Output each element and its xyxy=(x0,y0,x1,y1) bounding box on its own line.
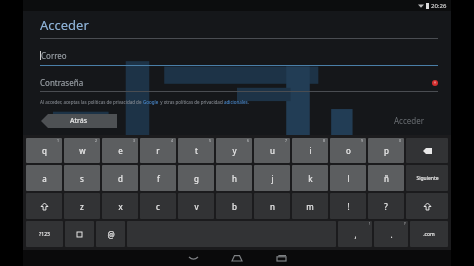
staticText: Acceder xyxy=(394,115,425,126)
staticText: z xyxy=(80,201,84,212)
staticText: 1 xyxy=(57,138,60,143)
staticText: Acceder xyxy=(40,16,89,34)
staticText: 6 xyxy=(247,138,250,143)
button[interactable]: b xyxy=(216,193,252,219)
button[interactable]: Correo xyxy=(40,50,438,61)
button[interactable]: ?123 xyxy=(26,221,63,247)
button[interactable]: g xyxy=(178,165,214,191)
staticText: Siguiente xyxy=(416,175,439,182)
button[interactable]: r xyxy=(140,138,176,163)
button[interactable]: Atrás xyxy=(41,114,117,128)
button[interactable]: z xyxy=(64,193,100,219)
button[interactable]: f xyxy=(140,165,176,191)
staticText: Google xyxy=(143,99,159,105)
staticText: m xyxy=(306,201,314,212)
staticText: 7 xyxy=(285,138,288,143)
staticText: v xyxy=(194,201,199,212)
staticText: w xyxy=(79,145,86,156)
button[interactable]: ! xyxy=(330,193,366,219)
button[interactable]: u xyxy=(254,138,290,163)
button[interactable]: s xyxy=(64,165,100,191)
button[interactable]: Acceder xyxy=(388,112,431,129)
button[interactable]: i xyxy=(292,138,328,163)
staticText: t xyxy=(195,145,198,156)
staticText: Contraseña xyxy=(40,77,84,88)
button[interactable]: .com xyxy=(410,221,448,247)
button[interactable]: Change language xyxy=(65,221,94,247)
staticText: 3 xyxy=(133,138,136,143)
button[interactable]: Recent apps xyxy=(259,250,303,266)
staticText: ? xyxy=(384,201,388,212)
button[interactable]: ? xyxy=(368,193,404,219)
staticText: ?123 xyxy=(39,231,50,238)
button[interactable]: . xyxy=(374,221,408,247)
staticText: Al acceder, aceptas las políticas de pri… xyxy=(40,99,143,105)
button[interactable]: c xyxy=(140,193,176,219)
staticText: j xyxy=(271,173,274,184)
button[interactable]: Shift xyxy=(406,193,448,219)
staticText: , xyxy=(354,229,357,240)
button[interactable]: , xyxy=(338,221,372,247)
button[interactable]: Contraseña xyxy=(40,77,438,88)
staticText: g xyxy=(194,173,199,184)
staticText: b xyxy=(232,201,237,212)
staticText: 8 xyxy=(323,138,326,143)
staticText: Correo xyxy=(41,50,67,61)
button[interactable]: x xyxy=(102,193,138,219)
staticText: ! xyxy=(347,201,350,212)
button[interactable]: h xyxy=(216,165,252,191)
staticText: d xyxy=(118,173,123,184)
button[interactable]: Siguiente xyxy=(406,165,448,191)
button[interactable]: o xyxy=(330,138,366,163)
button[interactable]: w xyxy=(64,138,100,163)
staticText: u xyxy=(270,145,275,156)
button[interactable]: k xyxy=(292,165,328,191)
button[interactable]: j xyxy=(254,165,290,191)
staticText: .com xyxy=(423,231,435,238)
button[interactable]: m xyxy=(292,193,328,219)
staticText: q xyxy=(42,145,47,156)
staticText: o xyxy=(346,145,351,156)
button[interactable]: v xyxy=(178,193,214,219)
button[interactable]: Shift xyxy=(26,193,62,219)
staticText: 9 xyxy=(361,138,364,143)
button[interactable]: n xyxy=(254,193,290,219)
staticText: h xyxy=(232,173,237,184)
button[interactable]: d xyxy=(102,165,138,191)
staticText: . xyxy=(390,229,393,240)
button[interactable]: ñ xyxy=(368,165,404,191)
staticText: . xyxy=(248,99,250,105)
staticText: ñ xyxy=(384,173,389,184)
staticText: 2 xyxy=(95,138,98,143)
staticText: x xyxy=(118,201,123,212)
staticText: n xyxy=(270,201,275,212)
staticText: e xyxy=(118,145,123,156)
staticText: l xyxy=(347,173,350,184)
staticText: y otras políticas de privacidad xyxy=(159,99,224,105)
staticText: 0 xyxy=(399,138,402,143)
button[interactable]: y xyxy=(216,138,252,163)
button[interactable]: Delete xyxy=(406,138,448,163)
button[interactable]: adicionales xyxy=(224,99,248,105)
button[interactable]: q xyxy=(26,138,62,163)
staticText: 20:26 xyxy=(431,2,447,10)
staticText: a xyxy=(42,173,47,184)
staticText: k xyxy=(308,173,313,184)
button[interactable]: t xyxy=(178,138,214,163)
staticText: c xyxy=(156,201,160,212)
button[interactable]: e xyxy=(102,138,138,163)
staticText: Atrás xyxy=(70,116,88,126)
other: Error xyxy=(432,80,438,86)
button[interactable]: @ xyxy=(96,221,125,247)
button[interactable]: p xyxy=(368,138,404,163)
staticText: i xyxy=(309,145,312,156)
button[interactable]: l xyxy=(330,165,366,191)
button[interactable]: Home xyxy=(215,250,259,266)
button[interactable]: Hide keyboard xyxy=(171,250,215,266)
staticText: 4 xyxy=(171,138,174,143)
staticText: p xyxy=(384,145,389,156)
button[interactable]: a xyxy=(26,165,62,191)
button[interactable]: Google xyxy=(143,99,159,105)
staticText: ? xyxy=(404,221,406,226)
